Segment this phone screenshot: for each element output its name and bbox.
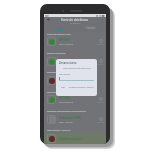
staticText: Kontrola szczegółowa [47,91,71,94]
staticText: BP 5699 [59,38,70,42]
staticText: Dokument 1998 [59,116,81,120]
staticText: Podzbiór dokumentów odrzuconych [47,110,86,113]
button[interactable]: ZAPISZ ZMIANY STANU [69,86,95,89]
staticText: Zmiana stanu [59,58,79,62]
staticText: ABC 2234/5/78 [59,101,73,104]
button[interactable]: BP 5699 [44,36,106,47]
staticText: POBIERZ [97,121,104,123]
staticText: Stan licznika [59,73,70,76]
button[interactable]: Download [94,36,106,47]
button[interactable]: NIE [61,86,65,89]
staticText: Ogólne [55,26,64,29]
staticText: ABC 1234/5/78 [59,43,73,46]
staticText: Dzisiaj 11:24 [59,63,71,66]
staticText: Wpisz nowy stan licznika tego punktu [63,67,91,69]
button[interactable]: BP 5700 [44,94,106,105]
staticText: Dostawa materiału [47,71,68,74]
staticText: POBIERZ [97,101,104,103]
staticText: Zadania [86,26,96,29]
button[interactable]: Kontrola obiektowa [44,17,106,25]
staticText: BP 5700 [59,96,70,100]
button[interactable]: Download [94,114,106,125]
button[interactable]: Navigate up [46,17,51,22]
button[interactable]: Dokument 1998 [44,114,106,125]
button[interactable]: Download [94,94,106,105]
staticText: Moduł kontroli 2 [59,137,83,141]
staticText: Zmiana stanu [59,61,77,65]
button[interactable]: Zmiana stanu [44,56,106,67]
button[interactable]: Jan Kowalski [44,75,106,86]
button[interactable]: Download [94,56,106,67]
staticText: Punkty kontrolne [47,52,66,55]
staticText: ZAPISZ ZMIANY STANU [69,86,95,89]
staticText: Kontrola ogólna: WB7 [47,33,71,36]
button[interactable]: Moduł kontroli 2 [44,133,106,144]
staticText: Data: 12.04.24 [59,121,73,124]
staticText: ul. Polna 12 [70,22,81,25]
staticText: POBIERZ [97,43,104,45]
staticText: Opis zasobu: Moduł K [47,129,71,132]
staticText: POBIERZ [97,63,104,65]
staticText: Jan Kowalski [59,77,77,81]
button[interactable]: Zadania [75,25,106,32]
staticText: Kontrola obiektowa [61,18,89,22]
button[interactable]: Ogólne [44,25,75,32]
staticText: NIE [61,86,65,89]
